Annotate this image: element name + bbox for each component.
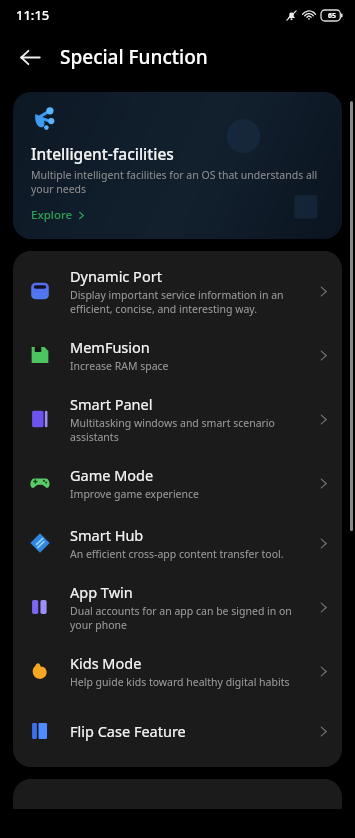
staticText: Kids Mode [70, 653, 142, 673]
button[interactable]: Dynamic Port [13, 257, 342, 325]
button[interactable]: Flip Case Feature [13, 701, 342, 761]
button[interactable]: Explore [31, 207, 86, 223]
button[interactable]: Kids Mode [13, 641, 342, 701]
staticText: Smart Panel [70, 394, 153, 414]
button[interactable]: Smart Panel [13, 385, 342, 453]
staticText: Increase RAM space [70, 359, 169, 373]
staticText: Intelligent-facilities [31, 143, 174, 164]
staticText: Flip Case Feature [70, 721, 186, 741]
button[interactable]: App Twin [13, 573, 342, 641]
staticText: Multitasking windows and smart scenario … [70, 416, 309, 444]
staticText: App Twin [70, 582, 133, 602]
staticText: Dual accounts for an app can be signed i… [70, 604, 309, 632]
button[interactable]: MemFusion [13, 325, 342, 385]
staticText: Smart Hub [70, 525, 144, 545]
staticText: Game Mode [70, 465, 154, 485]
staticText: Multiple intelligent facilities for an O… [31, 168, 326, 196]
button[interactable] [13, 779, 342, 809]
button[interactable]: Intelligent-facilities [13, 92, 342, 239]
staticText: MemFusion [70, 337, 150, 357]
button[interactable]: Game Mode [13, 453, 342, 513]
staticText: 65 [328, 11, 337, 21]
staticText: An efficient cross-app content transfer … [70, 547, 284, 561]
staticText: Special Function [60, 44, 208, 70]
staticText: Explore [31, 207, 73, 223]
button[interactable]: Smart Hub [13, 513, 342, 573]
staticText: Display important service information in… [70, 288, 309, 316]
button[interactable]: Back [10, 37, 50, 77]
staticText: Help guide kids toward healthy digital h… [70, 675, 290, 689]
staticText: Dynamic Port [70, 266, 162, 286]
staticText: 11:15 [16, 6, 50, 24]
staticText: Improve game experience [70, 487, 199, 501]
